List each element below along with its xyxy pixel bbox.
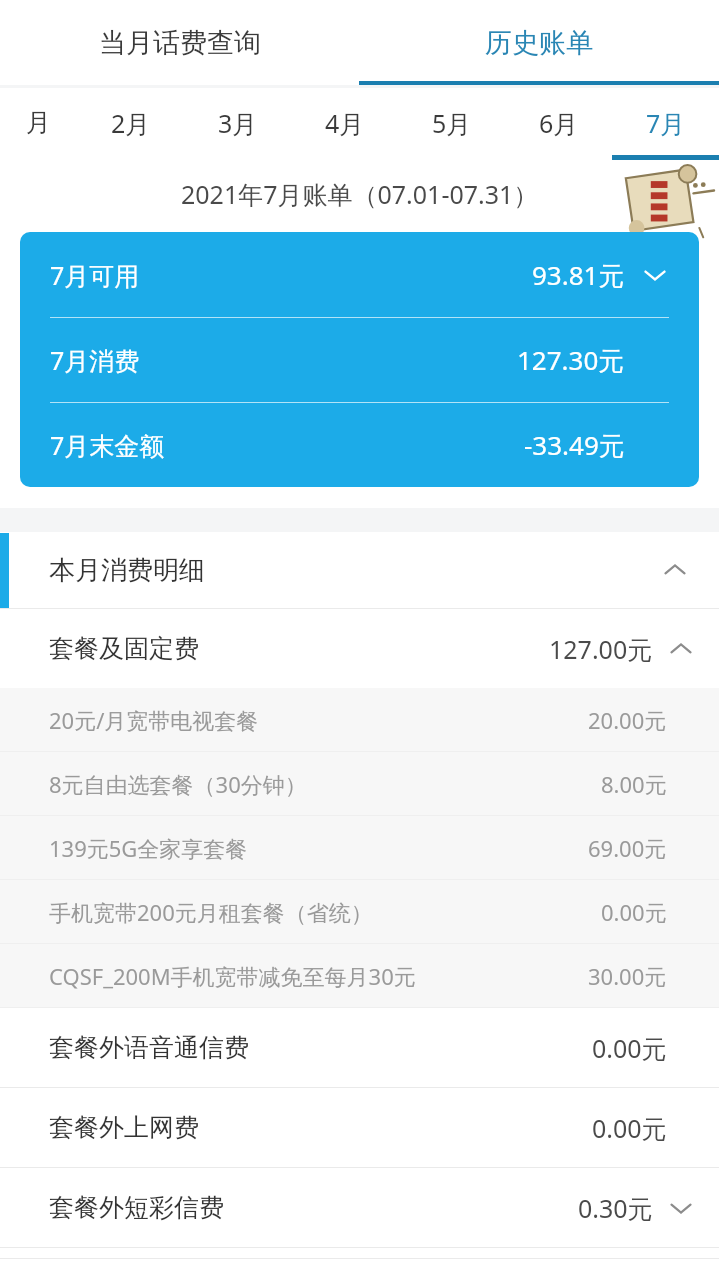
staticText: 0.00元: [601, 897, 667, 927]
button[interactable]: 8元自由选套餐（30分钟）: [0, 752, 719, 815]
staticText: 127.00元: [549, 632, 653, 666]
staticText: 套餐及固定费: [49, 633, 199, 664]
staticText: 8元自由选套餐（30分钟）: [49, 769, 307, 799]
button[interactable]: 套餐及固定费: [0, 609, 719, 688]
staticText: 历史账单: [485, 26, 593, 60]
button[interactable]: 4月: [291, 85, 398, 160]
button[interactable]: 7月可用: [20, 232, 699, 487]
staticText: 5月: [432, 106, 472, 140]
staticText: 20.00元: [588, 705, 667, 735]
staticText: 0.30元: [578, 1191, 653, 1225]
button[interactable]: 7月: [612, 85, 719, 160]
staticText: 7月: [646, 106, 686, 140]
staticText: 手机宽带200元月租套餐（省统）: [49, 897, 373, 927]
staticText: 69.00元: [588, 833, 667, 863]
staticText: 7月末金额: [50, 428, 165, 462]
staticText: 月: [26, 107, 51, 138]
staticText: 本月消费明细: [49, 554, 205, 587]
button[interactable]: 5月: [398, 85, 505, 160]
staticText: 3月: [218, 106, 258, 140]
button[interactable]: CQSF_200M手机宽带减免至每月30元: [0, 944, 719, 1007]
staticText: 4月: [325, 106, 365, 140]
staticText: 6月: [539, 106, 579, 140]
button[interactable]: 2月: [77, 85, 184, 160]
button[interactable]: 3月: [184, 85, 291, 160]
staticText: 0.00元: [592, 1031, 667, 1065]
button[interactable]: 套餐外短彩信费: [0, 1168, 719, 1247]
staticText: 20元/月宽带电视套餐: [49, 705, 259, 735]
staticText: 8.00元: [601, 769, 667, 799]
staticText: 30.00元: [588, 961, 667, 991]
staticText: CQSF_200M手机宽带减免至每月30元: [49, 961, 416, 991]
button[interactable]: 手机宽带200元月租套餐（省统）: [0, 880, 719, 943]
staticText: 2月: [111, 106, 151, 140]
staticText: 7月可用: [50, 258, 140, 292]
button[interactable]: 6月: [505, 85, 612, 160]
button[interactable]: 20元/月宽带电视套餐: [0, 688, 719, 751]
button[interactable]: 本月消费明细: [0, 532, 719, 608]
staticText: 0.00元: [592, 1111, 667, 1145]
staticText: 套餐外语音通信费: [49, 1032, 249, 1063]
staticText: 套餐外短彩信费: [49, 1192, 224, 1223]
button[interactable]: 套餐外上网费: [0, 1088, 719, 1167]
staticText: 套餐外上网费: [49, 1112, 199, 1143]
button[interactable]: 月: [0, 85, 77, 160]
staticText: 139元5G全家享套餐: [49, 833, 248, 863]
button[interactable]: 139元5G全家享套餐: [0, 816, 719, 879]
button[interactable]: 套餐外语音通信费: [0, 1008, 719, 1087]
staticText: 2021年7月账单（07.01-07.31）: [181, 177, 539, 211]
button[interactable]: 当月话费查询: [0, 0, 359, 85]
staticText: 当月话费查询: [99, 26, 261, 60]
staticText: 93.81元: [532, 257, 625, 293]
staticText: -33.49元: [524, 427, 625, 463]
staticText: 127.30元: [517, 342, 625, 378]
button[interactable]: 趣味账单: [617, 166, 715, 238]
staticText: 7月消费: [50, 343, 140, 377]
button[interactable]: 历史账单: [359, 0, 719, 85]
